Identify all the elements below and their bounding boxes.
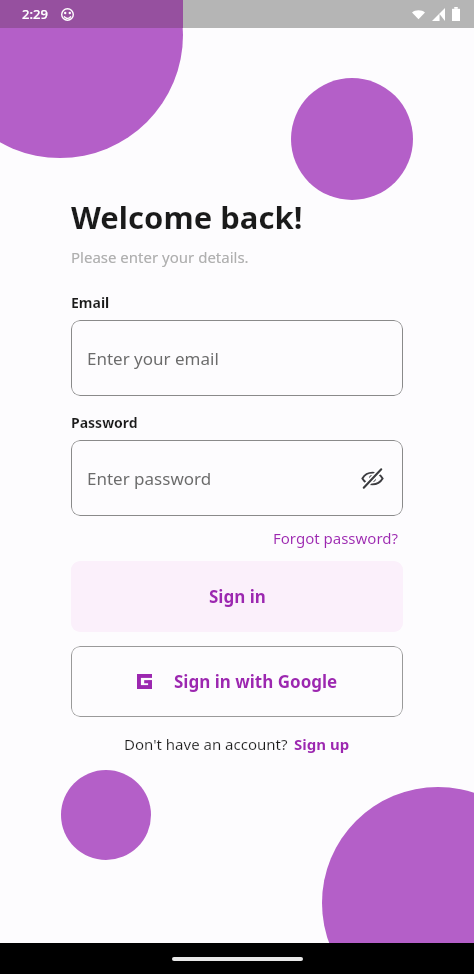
button[interactable]: Forgot password? <box>269 524 403 552</box>
button[interactable]: Sign in <box>71 561 403 632</box>
staticText: Sign in <box>209 585 266 608</box>
button[interactable]: Enter your email <box>71 320 403 396</box>
staticText: Don't have an account? <box>124 734 288 754</box>
button[interactable]: Show password <box>357 463 387 493</box>
staticText: Please enter your details. <box>71 247 249 267</box>
staticText: Password <box>71 413 138 432</box>
button[interactable]: Enter password <box>71 440 403 516</box>
staticText: Welcome back! <box>71 196 303 238</box>
staticText: Sign in with Google <box>174 670 338 693</box>
button[interactable]: Sign up <box>294 734 350 754</box>
staticText: Email <box>71 293 110 312</box>
button[interactable]: Sign in with Google <box>71 646 403 717</box>
staticText: Forgot password? <box>273 528 399 548</box>
staticText: Sign up <box>294 734 350 754</box>
staticText: Enter your email <box>87 347 219 370</box>
staticText: Enter password <box>87 467 212 490</box>
staticText: 2:29 <box>22 5 48 23</box>
